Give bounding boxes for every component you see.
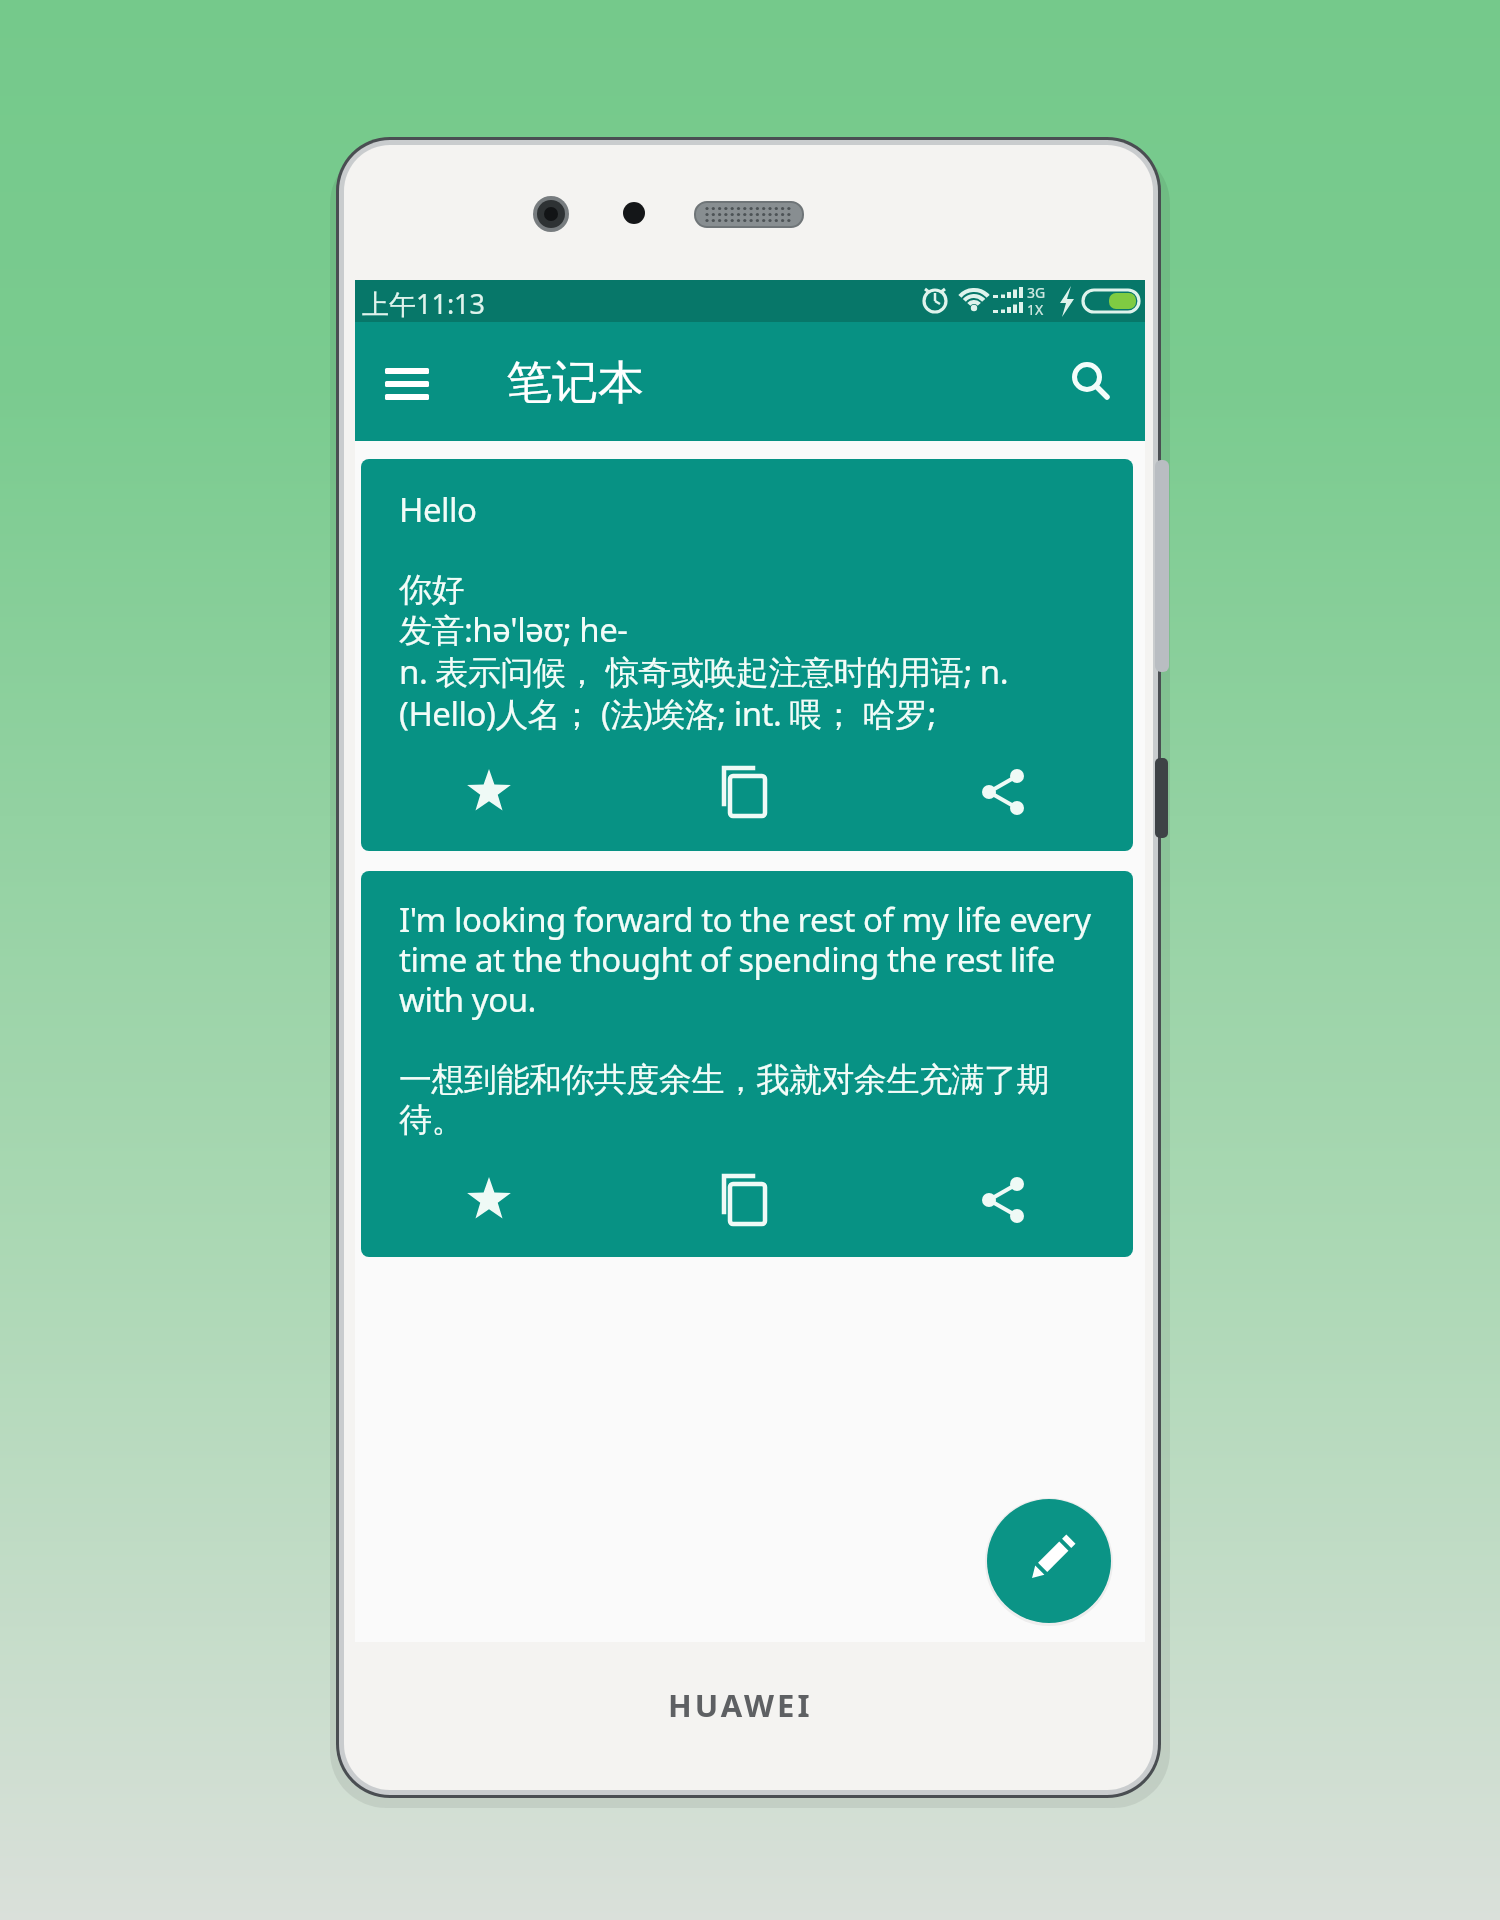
staticText: 笔记本 <box>506 354 644 412</box>
staticText: 3G 1X <box>1027 283 1046 319</box>
button[interactable]: Hello 你好 发音:hə'ləʊ; he- n. 表示问候， 惊奇或唤起注意… <box>361 459 1133 851</box>
button[interactable] <box>449 1160 529 1240</box>
button[interactable] <box>704 1160 784 1240</box>
staticText: Hello 你好 发音:hə'ləʊ; he- n. 表示问候， 惊奇或唤起注意… <box>399 487 1009 736</box>
button[interactable] <box>449 752 529 832</box>
button[interactable] <box>704 752 784 832</box>
button[interactable] <box>963 1160 1043 1240</box>
button[interactable] <box>963 752 1043 832</box>
button[interactable] <box>369 350 445 414</box>
button[interactable]: I'm looking forward to the rest of my li… <box>361 871 1133 1257</box>
staticText: I'm looking forward to the rest of my li… <box>399 897 1091 1141</box>
staticText: HUAWEI <box>668 1684 813 1726</box>
staticText: 上午11:13 <box>362 285 486 322</box>
button[interactable] <box>1055 345 1121 411</box>
button[interactable] <box>987 1499 1111 1623</box>
